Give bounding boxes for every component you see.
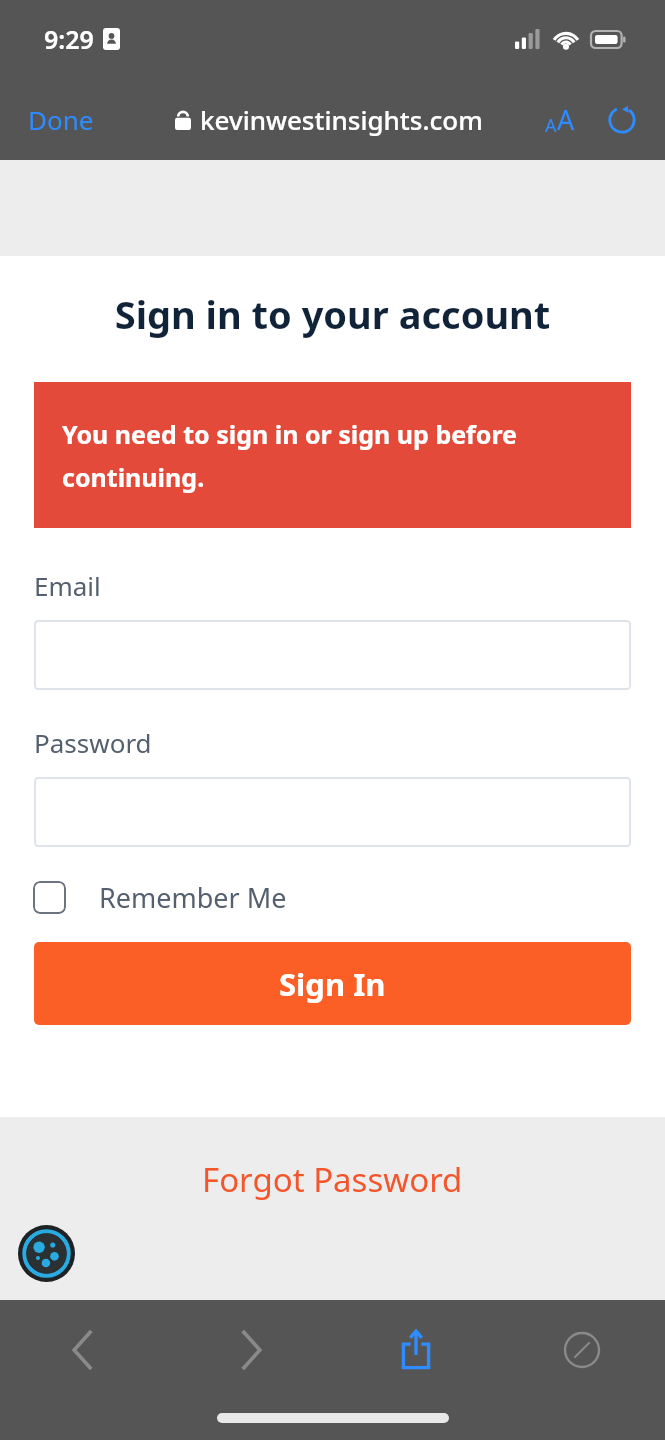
button[interactable]: Safari	[499, 1300, 665, 1400]
staticText: Sign in to your account	[0, 288, 665, 340]
staticText: Email	[34, 568, 101, 603]
staticText: A	[545, 113, 557, 138]
staticText: 9:29	[44, 22, 94, 56]
staticText: Sign In	[279, 963, 386, 1005]
staticText: Remember Me	[99, 879, 287, 916]
button[interactable]: Back	[0, 1300, 167, 1400]
button[interactable]: Reload page	[599, 97, 645, 143]
staticText: Done	[28, 102, 94, 137]
staticText: A	[557, 101, 575, 138]
staticText: Password	[34, 725, 152, 760]
staticText: Forgot Password	[202, 1157, 463, 1202]
button[interactable]: Password input field	[34, 777, 631, 847]
button[interactable]: Email input field	[34, 620, 631, 690]
button[interactable]: Done	[14, 94, 108, 145]
button[interactable]: Accessibility widget	[18, 1225, 75, 1282]
button[interactable]: Text size options	[539, 95, 581, 144]
button[interactable]: Share	[333, 1300, 499, 1400]
staticText: kevinwestinsights.com	[200, 102, 483, 137]
button[interactable]: Remember Me	[33, 875, 305, 920]
button[interactable]: Forward	[167, 1300, 333, 1400]
staticText: You need to sign in or sign up before co…	[62, 417, 603, 494]
button[interactable]: Sign In	[34, 942, 631, 1025]
button[interactable]: Forgot Password	[188, 1151, 477, 1208]
